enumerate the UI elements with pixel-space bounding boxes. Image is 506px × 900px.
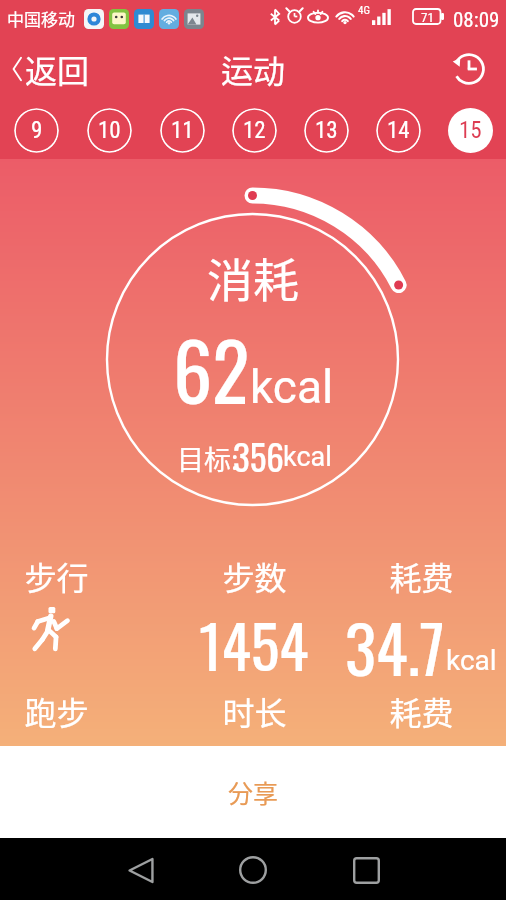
staticText: 34.7	[345, 598, 445, 694]
staticText: 消耗	[207, 244, 299, 311]
staticText: 14	[387, 117, 410, 144]
staticText: 中国移动	[7, 6, 75, 31]
staticText: 目标:	[177, 439, 239, 478]
staticText: 耗费	[389, 688, 454, 734]
button[interactable]: 分享	[0, 746, 506, 838]
staticText: 1454	[199, 599, 309, 688]
button[interactable]: 15	[448, 108, 493, 153]
staticText: kcal	[446, 644, 497, 677]
staticText: 4G	[358, 4, 370, 17]
staticText: 跑步	[24, 688, 89, 734]
button[interactable]: Back	[117, 846, 165, 894]
staticText: 15	[459, 117, 482, 144]
button[interactable]: Home	[229, 846, 277, 894]
staticText: 时长	[222, 688, 287, 734]
staticText: kcal	[283, 441, 332, 473]
staticText: 08:09	[453, 8, 500, 33]
staticText: 71	[421, 10, 434, 25]
staticText: 356	[233, 430, 284, 482]
button[interactable]: 13	[304, 108, 349, 153]
button[interactable]: 返回	[12, 46, 90, 92]
button[interactable]: 12	[232, 108, 277, 153]
staticText: 13	[315, 117, 338, 144]
button[interactable]: 9	[14, 108, 59, 153]
staticText: 62	[173, 311, 250, 427]
staticText: 运动	[221, 46, 286, 92]
staticText: 返回	[25, 46, 90, 92]
button[interactable]: 11	[160, 108, 205, 153]
staticText: 步数	[222, 553, 287, 599]
staticText: 9	[31, 117, 43, 144]
staticText: 步行	[24, 553, 89, 599]
button[interactable]: History	[447, 47, 491, 91]
staticText: 分享	[228, 774, 279, 810]
button[interactable]: 10	[87, 108, 132, 153]
staticText: 11	[171, 117, 194, 144]
staticText: 10	[98, 117, 121, 144]
button[interactable]: Recents	[342, 846, 390, 894]
button[interactable]: 14	[376, 108, 421, 153]
staticText: 耗费	[389, 553, 454, 599]
staticText: 12	[243, 117, 266, 144]
staticText: kcal	[250, 360, 334, 414]
